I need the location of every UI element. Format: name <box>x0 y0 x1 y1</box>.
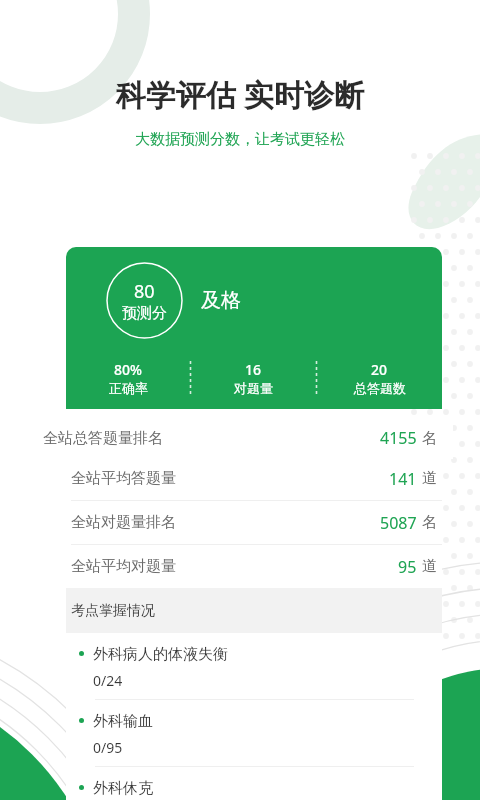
button[interactable]: 20 <box>317 360 442 396</box>
staticText: 正确率 <box>109 380 148 396</box>
staticText: 科学评估 实时诊断 <box>0 74 480 115</box>
staticText: 全站对题量排名 <box>71 513 176 532</box>
button[interactable]: 全站平均答题量 <box>66 457 442 500</box>
staticText: 20 <box>371 360 388 379</box>
staticText: 0/24 <box>93 671 123 690</box>
staticText: 名 <box>422 513 437 532</box>
staticText: 全站平均对题量 <box>71 557 176 576</box>
staticText: 全站平均答题量 <box>71 469 176 488</box>
staticText: 4155 <box>380 427 417 449</box>
staticText: 5087 <box>380 512 417 534</box>
staticText: 80% <box>114 360 142 379</box>
button[interactable]: 外科病人的体液失衡 <box>66 633 442 700</box>
button[interactable]: 外科输血 <box>66 700 442 767</box>
staticText: 外科休克 <box>93 779 153 798</box>
staticText: 考点掌握情况 <box>71 602 155 620</box>
staticText: 大数据预测分数，让考试更轻松 <box>0 130 480 149</box>
button[interactable]: 外科休克 <box>66 767 442 800</box>
staticText: 名 <box>422 429 437 448</box>
staticText: 道 <box>422 557 437 576</box>
staticText: 预测分 <box>122 304 167 323</box>
staticText: 16 <box>245 360 262 379</box>
button[interactable]: 全站对题量排名 <box>66 501 442 544</box>
staticText: 0/95 <box>93 738 123 757</box>
staticText: 80 <box>134 279 155 304</box>
staticText: 外科病人的体液失衡 <box>93 645 228 664</box>
staticText: 道 <box>422 469 437 488</box>
button[interactable]: 全站总答题量排名 <box>27 417 453 459</box>
staticText: 及格 <box>201 288 241 313</box>
button[interactable]: 16 <box>191 360 316 396</box>
staticText: 外科输血 <box>93 712 153 731</box>
button[interactable]: 80% <box>66 360 190 396</box>
button[interactable]: 全站平均对题量 <box>66 545 442 588</box>
staticText: 全站总答题量排名 <box>43 429 163 448</box>
staticText: 对题量 <box>234 380 273 396</box>
staticText: 95 <box>398 556 417 578</box>
button[interactable]: 考点掌握情况 <box>66 588 442 633</box>
staticText: 总答题数 <box>354 380 406 396</box>
staticText: 141 <box>389 468 417 490</box>
